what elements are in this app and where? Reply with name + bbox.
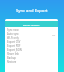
staticText: Export PDF: [7, 44, 21, 48]
staticText: Backup: [7, 56, 16, 60]
staticText: Auto sync: [7, 32, 19, 36]
button[interactable]: Export options: [5, 21, 58, 27]
staticText: Export CSV: [7, 40, 21, 44]
staticText: Sync now: [7, 28, 19, 32]
staticText: Share link: [7, 52, 19, 56]
staticText: On: [52, 33, 56, 36]
staticText: Export options: [23, 23, 40, 26]
button[interactable]: Share link: [7, 52, 56, 56]
button[interactable]: Export PDF: [7, 44, 56, 48]
button[interactable]: Backup: [7, 56, 56, 60]
button[interactable]: Sync now: [7, 28, 56, 32]
button[interactable]: Export CSV: [7, 40, 56, 44]
button[interactable]: Wi-Fi only: [7, 36, 56, 40]
button[interactable]: Auto sync: [7, 32, 56, 36]
staticText: Sync and Export: [16, 8, 48, 14]
staticText: Restore: [7, 60, 17, 64]
staticText: Wi-Fi only: [7, 36, 19, 40]
button[interactable]: Restore: [7, 60, 56, 64]
button[interactable]: Export JSON: [7, 48, 56, 52]
staticText: Export JSON: [7, 48, 22, 52]
